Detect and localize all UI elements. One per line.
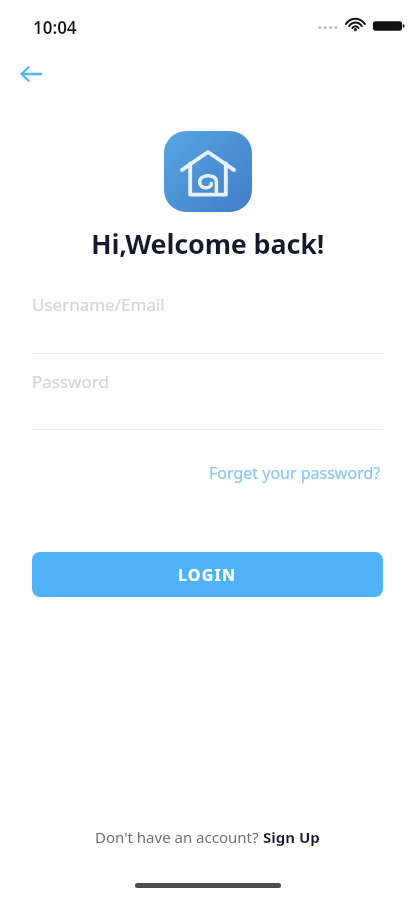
button[interactable]: Sign Up xyxy=(263,827,320,847)
button[interactable]: LOGIN xyxy=(32,552,383,597)
button[interactable]: Username/Email xyxy=(32,281,383,327)
staticText: Don't have an account? xyxy=(95,827,263,847)
staticText: Forget your password? xyxy=(209,462,381,484)
staticText: Hi,Welcome back! xyxy=(91,225,325,262)
staticText: Sign Up xyxy=(263,827,320,847)
button[interactable]: Forget your password? xyxy=(205,458,385,488)
staticText: Password xyxy=(32,370,109,393)
staticText: LOGIN xyxy=(178,564,237,586)
staticText: 10:04 xyxy=(33,16,77,39)
button[interactable]: Password xyxy=(32,358,383,404)
staticText: Username/Email xyxy=(32,293,165,316)
button[interactable]: Back xyxy=(11,54,51,94)
